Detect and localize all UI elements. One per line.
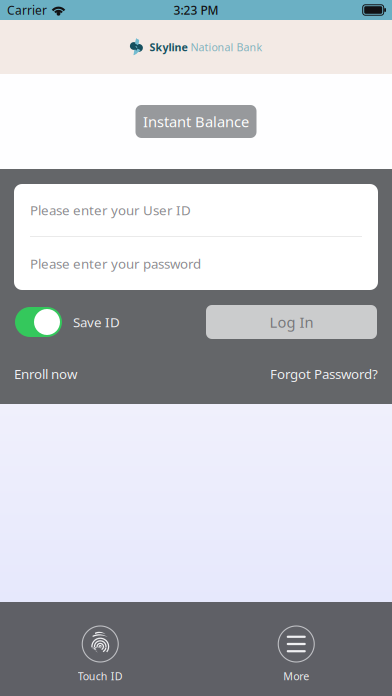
staticText: National Bank (190, 40, 262, 54)
staticText: Skyline (149, 40, 187, 54)
staticText: Please enter your password (30, 255, 201, 272)
staticText (143, 41, 149, 53)
button[interactable]: Instant Balance (135, 105, 256, 138)
staticText: Enroll now (14, 365, 77, 383)
button[interactable]: Touch ID (78, 626, 123, 683)
button[interactable]: Enroll now (14, 365, 77, 383)
staticText: Carrier (7, 2, 47, 18)
button[interactable]: Log In (206, 305, 377, 339)
button[interactable]: More (278, 626, 314, 683)
staticText: Forgot Password? (270, 365, 378, 383)
button[interactable]: Save ID (15, 307, 120, 337)
staticText: Save ID (73, 313, 120, 331)
staticText: More (283, 669, 309, 683)
staticText: Touch ID (78, 669, 123, 683)
staticText: Instant Balance (143, 112, 249, 131)
staticText: Please enter your User ID (30, 201, 191, 219)
staticText: 3:23 PM (173, 2, 218, 18)
staticText: Log In (269, 312, 313, 332)
button[interactable]: Forgot Password? (270, 365, 378, 383)
